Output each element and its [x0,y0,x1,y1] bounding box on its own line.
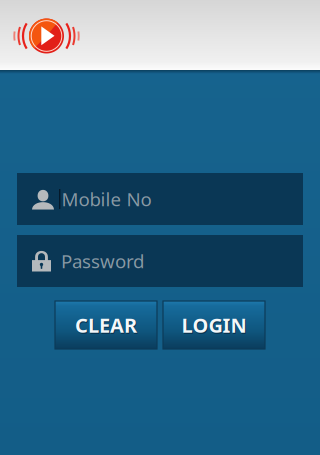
button[interactable]: Password [17,235,303,287]
staticText: Mobile No [61,187,151,211]
staticText: LOGIN [181,312,246,338]
staticText: CLEAR [76,313,138,339]
staticText: CLEAR [75,312,137,338]
button[interactable]: Mobile No [17,173,303,225]
button[interactable]: CLEAR [55,301,157,349]
staticText: Password [61,249,144,273]
button[interactable]: LOGIN [163,301,265,349]
staticText: LOGIN [182,313,247,339]
